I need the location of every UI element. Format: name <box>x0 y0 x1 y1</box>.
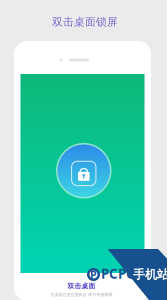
staticText: 在桌面任意位置双击 即可快速锁屏 <box>50 292 112 297</box>
button[interactable]: 锁屏 <box>56 143 111 198</box>
staticText: PCPC <box>101 265 135 282</box>
staticText: P <box>90 267 97 282</box>
staticText: 手机站 <box>133 267 168 282</box>
staticText: 双击桌面 <box>67 282 95 290</box>
staticText: www.pcpc.to <box>103 278 125 284</box>
staticText: 双击桌面锁屏 <box>52 15 118 28</box>
